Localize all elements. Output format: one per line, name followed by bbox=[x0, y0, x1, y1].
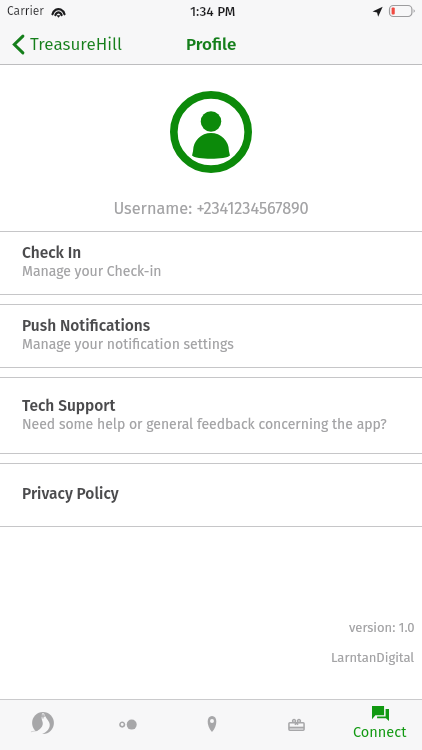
button[interactable]: Tech Support bbox=[0, 377, 422, 454]
staticText: Manage your Check-in bbox=[22, 263, 162, 280]
staticText: TreasureHill bbox=[30, 34, 122, 54]
staticText: Profile bbox=[186, 34, 237, 54]
staticText: Tech Support bbox=[22, 397, 116, 416]
staticText: Need some help or general feedback conce… bbox=[22, 416, 387, 433]
staticText: version: 1.0 bbox=[349, 620, 415, 636]
button[interactable]: Privacy Policy bbox=[0, 463, 422, 527]
staticText: Username: +2341234567890 bbox=[0, 199, 422, 219]
button[interactable]: Home bbox=[0, 699, 85, 750]
staticText: Connect bbox=[353, 723, 407, 740]
staticText: Push Notifications bbox=[22, 317, 151, 336]
staticText: Privacy Policy bbox=[22, 485, 119, 504]
staticText: Manage your notification settings bbox=[22, 336, 234, 353]
button[interactable]: Places bbox=[170, 699, 254, 750]
button[interactable]: TreasureHill bbox=[0, 29, 136, 59]
button[interactable]: Rewards bbox=[254, 699, 338, 750]
button[interactable]: Connect bbox=[338, 699, 422, 750]
staticText: Carrier bbox=[7, 4, 44, 18]
staticText: LarntanDigital bbox=[331, 650, 415, 666]
staticText: Check In bbox=[22, 244, 82, 263]
button[interactable]: Check In bbox=[0, 231, 422, 295]
button[interactable]: Push Notifications bbox=[0, 304, 422, 368]
button[interactable]: Discover bbox=[85, 699, 170, 750]
staticText: 1:34 PM bbox=[190, 3, 236, 19]
